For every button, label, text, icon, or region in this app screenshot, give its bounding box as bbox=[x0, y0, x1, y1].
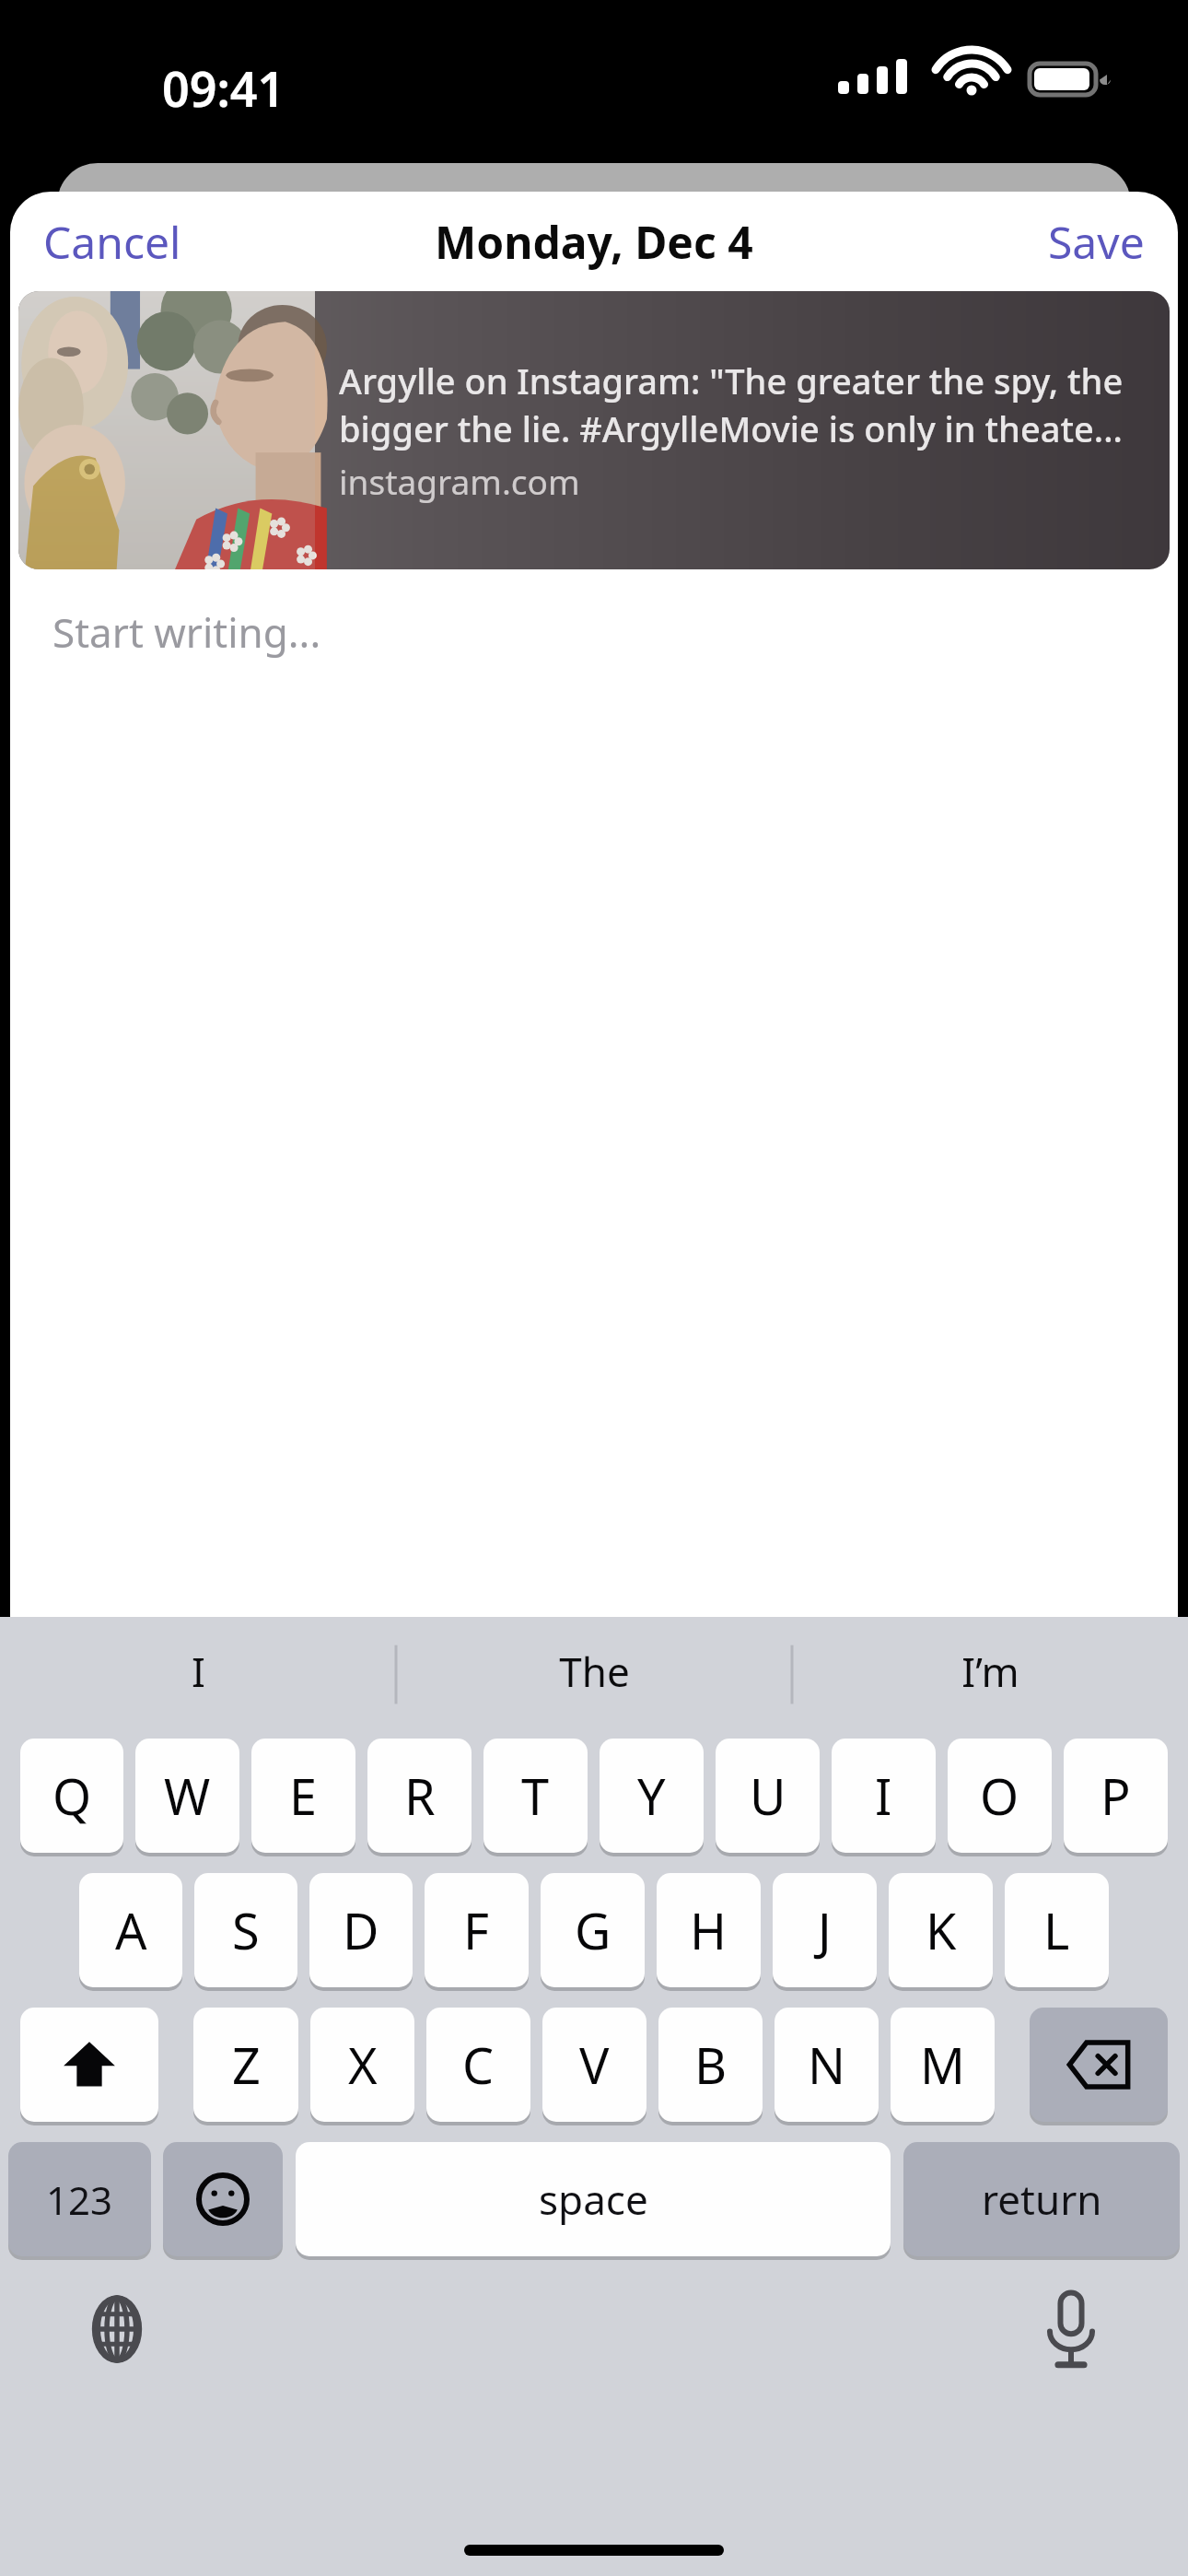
staticText: O bbox=[980, 1762, 1019, 1830]
staticText: Cancel bbox=[43, 212, 181, 272]
button[interactable]: I bbox=[832, 1739, 936, 1853]
button[interactable]: S bbox=[194, 1873, 297, 1987]
staticText: X bbox=[348, 2031, 378, 2099]
button[interactable]: Backspace bbox=[1030, 2008, 1168, 2122]
staticText: T bbox=[521, 1762, 550, 1830]
staticText: Z bbox=[232, 2031, 261, 2099]
staticText: P bbox=[1101, 1762, 1131, 1830]
staticText: Save bbox=[1048, 212, 1145, 272]
button[interactable]: Dictation bbox=[1020, 2278, 1122, 2380]
button[interactable]: Cancel bbox=[23, 199, 202, 285]
button[interactable]: Argylle on Instagram: "The greater the s… bbox=[18, 291, 1170, 569]
staticText: return bbox=[982, 2172, 1102, 2227]
button[interactable]: Z bbox=[193, 2008, 298, 2122]
staticText: I bbox=[875, 1762, 892, 1830]
staticText: V bbox=[579, 2031, 610, 2099]
button[interactable]: The bbox=[396, 1617, 792, 1726]
staticText: G bbox=[575, 1896, 611, 1964]
button[interactable]: A bbox=[79, 1873, 182, 1987]
button[interactable]: V bbox=[542, 2008, 646, 2122]
staticText: K bbox=[926, 1896, 957, 1964]
button[interactable]: space bbox=[296, 2142, 891, 2256]
staticText: I bbox=[192, 1644, 205, 1699]
button[interactable]: 123 bbox=[8, 2142, 151, 2256]
staticText: The bbox=[559, 1644, 630, 1699]
button[interactable]: P bbox=[1064, 1739, 1168, 1853]
staticText: D bbox=[343, 1896, 379, 1964]
staticText: J bbox=[818, 1896, 832, 1964]
button[interactable]: U bbox=[716, 1739, 820, 1853]
button[interactable]: K bbox=[889, 1873, 993, 1987]
staticText: Q bbox=[52, 1762, 92, 1830]
staticText: W bbox=[164, 1762, 211, 1830]
button[interactable]: I’m bbox=[792, 1617, 1188, 1726]
button[interactable]: H bbox=[657, 1873, 761, 1987]
button[interactable]: Change keyboard bbox=[66, 2278, 168, 2380]
button[interactable]: J bbox=[773, 1873, 877, 1987]
staticText: C bbox=[462, 2031, 495, 2099]
staticText: I’m bbox=[961, 1644, 1019, 1699]
staticText: F bbox=[463, 1896, 490, 1964]
button[interactable]: Q bbox=[20, 1739, 123, 1853]
button[interactable]: B bbox=[658, 2008, 763, 2122]
button[interactable]: L bbox=[1005, 1873, 1109, 1987]
staticText: N bbox=[808, 2031, 846, 2099]
button[interactable]: return bbox=[903, 2142, 1180, 2256]
staticText: R bbox=[404, 1762, 436, 1830]
button[interactable]: M bbox=[891, 2008, 995, 2122]
button[interactable]: X bbox=[310, 2008, 414, 2122]
button[interactable]: G bbox=[541, 1873, 645, 1987]
button[interactable]: F bbox=[425, 1873, 529, 1987]
button[interactable]: W bbox=[135, 1739, 239, 1853]
button[interactable]: O bbox=[948, 1739, 1052, 1853]
staticText: A bbox=[115, 1896, 147, 1964]
button[interactable]: Save bbox=[1028, 199, 1165, 285]
staticText: U bbox=[750, 1762, 786, 1830]
button[interactable]: D bbox=[309, 1873, 413, 1987]
button[interactable]: C bbox=[426, 2008, 530, 2122]
staticText: 123 bbox=[46, 2173, 113, 2226]
staticText: H bbox=[690, 1896, 728, 1964]
staticText: space bbox=[539, 2172, 648, 2227]
staticText: E bbox=[289, 1762, 318, 1830]
staticText: L bbox=[1043, 1896, 1070, 1964]
button[interactable]: Y bbox=[600, 1739, 704, 1853]
button[interactable]: Emoji bbox=[163, 2142, 283, 2256]
button[interactable]: N bbox=[775, 2008, 879, 2122]
staticText: B bbox=[694, 2031, 728, 2099]
button[interactable]: E bbox=[251, 1739, 355, 1853]
button[interactable]: T bbox=[483, 1739, 588, 1853]
staticText: M bbox=[920, 2031, 965, 2099]
button[interactable]: Shift bbox=[20, 2008, 158, 2122]
button[interactable]: Start writing... bbox=[52, 604, 321, 660]
staticText: Y bbox=[637, 1762, 666, 1830]
staticText: S bbox=[232, 1896, 260, 1964]
staticText: 09:41 bbox=[162, 55, 285, 121]
staticText: Monday, Dec 4 bbox=[435, 212, 753, 272]
button[interactable]: R bbox=[367, 1739, 472, 1853]
button[interactable]: I bbox=[0, 1617, 396, 1726]
staticText: instagram.com bbox=[339, 458, 580, 504]
staticText: Argylle on Instagram: "The greater the s… bbox=[339, 357, 1147, 452]
